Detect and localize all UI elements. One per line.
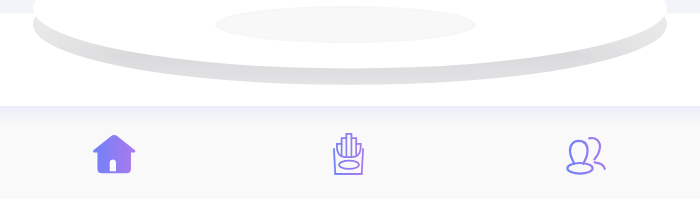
button[interactable]: Home	[0, 106, 234, 199]
button[interactable]: Friends	[467, 106, 700, 199]
button[interactable]: Menu	[234, 106, 467, 199]
